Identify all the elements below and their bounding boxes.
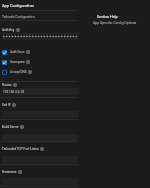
- other: More information: [26, 50, 30, 54]
- button[interactable]: [2, 33, 78, 40]
- staticText: Auth Key: [2, 28, 15, 32]
- staticText: App Specific Config Options: [93, 21, 137, 25]
- staticText: Auth Once: [10, 50, 25, 54]
- staticText: Section Help: [97, 15, 118, 19]
- other: More information: [13, 83, 17, 87]
- other: More information: [12, 103, 16, 107]
- staticText: 192.168.3.2/24: [3, 90, 25, 94]
- staticText: App Configuration: [2, 3, 34, 8]
- staticText: Accept DNS: [10, 70, 27, 74]
- staticText: Tailscaled TCP Port Listen: [2, 147, 39, 151]
- button[interactable]: Section Help: [97, 15, 118, 19]
- button[interactable]: Routes: [2, 82, 17, 88]
- button[interactable]: 192.168.3.2/24: [2, 88, 78, 95]
- other: More information: [28, 70, 32, 74]
- button[interactable]: Build Server: [2, 124, 24, 130]
- button[interactable]: Tailscaled TCP Port Listen: [2, 146, 44, 152]
- button[interactable]: Auth Key: [2, 27, 20, 33]
- other: More information: [40, 147, 44, 151]
- staticText: Routes: [2, 83, 12, 87]
- other: More information: [26, 60, 30, 64]
- staticText: Userspace: [10, 60, 25, 64]
- other: More information: [18, 170, 22, 174]
- button[interactable]: App Configuration: [2, 3, 34, 8]
- button[interactable]: Userspace: [2, 58, 78, 66]
- other: More information: [20, 125, 24, 129]
- button[interactable]: Accept DNS: [2, 68, 78, 76]
- staticText: Hostname: [2, 170, 17, 174]
- staticText: Build Server: [2, 125, 19, 129]
- other: More information: [16, 28, 20, 32]
- button[interactable]: Hostname: [2, 169, 22, 175]
- staticText: Exit IP: [2, 103, 11, 107]
- button[interactable]: Exit IP: [2, 102, 16, 108]
- staticText: Tailscale Configuration: [2, 15, 35, 19]
- button[interactable]: Auth Once: [2, 48, 78, 56]
